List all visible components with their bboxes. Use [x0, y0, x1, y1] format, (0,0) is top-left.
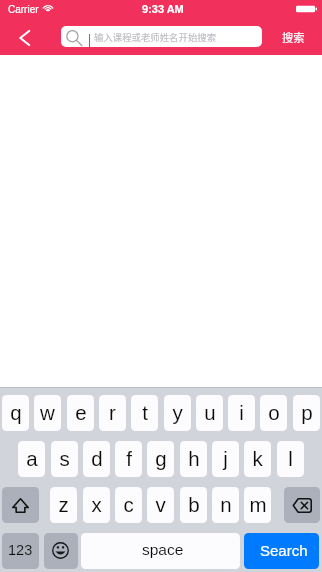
button[interactable]: l [277, 441, 304, 477]
staticText: p [301, 401, 313, 424]
staticText: h [188, 447, 200, 470]
button[interactable]: s [51, 441, 78, 477]
button[interactable]: 输入课程或老师姓名开始搜索 [61, 26, 262, 47]
staticText: r [109, 401, 116, 424]
staticText: l [288, 447, 293, 470]
button[interactable]: x [83, 487, 110, 523]
button[interactable]: Search [244, 533, 319, 569]
staticText: Carrier [8, 4, 39, 15]
button[interactable]: d [83, 441, 110, 477]
button[interactable]: k [244, 441, 271, 477]
staticText: space [142, 541, 184, 558]
button[interactable]: c [115, 487, 142, 523]
button[interactable]: Emoji [44, 533, 78, 569]
button[interactable]: u [196, 395, 223, 431]
staticText: Search [260, 542, 308, 559]
button[interactable]: Shift [2, 487, 39, 523]
staticText: j [223, 447, 228, 470]
button[interactable]: b [180, 487, 207, 523]
staticText: i [239, 401, 244, 424]
button[interactable]: y [164, 395, 191, 431]
button[interactable]: z [50, 487, 77, 523]
staticText: d [91, 447, 103, 470]
button[interactable]: n [212, 487, 239, 523]
button[interactable]: 123 [2, 533, 39, 569]
staticText: q [10, 401, 22, 424]
staticText: 123 [8, 542, 33, 558]
button[interactable]: m [244, 487, 271, 523]
staticText: k [252, 447, 263, 470]
button[interactable]: p [293, 395, 320, 431]
button[interactable]: 搜索 [273, 26, 313, 47]
button[interactable]: t [131, 395, 158, 431]
staticText: a [26, 447, 38, 470]
staticText: y [172, 401, 183, 424]
staticText: v [155, 493, 166, 516]
button[interactable]: h [180, 441, 207, 477]
button[interactable]: e [67, 395, 94, 431]
button[interactable]: w [34, 395, 61, 431]
button[interactable]: r [99, 395, 126, 431]
button[interactable]: g [147, 441, 174, 477]
staticText: o [268, 401, 280, 424]
button[interactable]: v [147, 487, 174, 523]
staticText: 9:33 AM [142, 3, 184, 15]
staticText: e [75, 401, 87, 424]
staticText: c [123, 493, 134, 516]
staticText: m [249, 493, 267, 516]
button[interactable]: o [260, 395, 287, 431]
staticText: u [204, 401, 216, 424]
staticText: 搜索 [282, 29, 305, 45]
button[interactable]: Backspace [284, 487, 320, 523]
staticText: s [59, 447, 70, 470]
button[interactable]: j [212, 441, 239, 477]
button[interactable]: space [81, 533, 240, 569]
button[interactable]: f [115, 441, 142, 477]
staticText: t [142, 401, 148, 424]
button[interactable]: a [18, 441, 45, 477]
staticText: b [188, 493, 200, 516]
staticText: 输入课程或老师姓名开始搜索 [94, 30, 217, 44]
staticText: f [126, 447, 132, 470]
button[interactable]: i [228, 395, 255, 431]
button[interactable]: q [2, 395, 29, 431]
staticText: z [58, 493, 69, 516]
staticText: n [220, 493, 232, 516]
staticText: x [91, 493, 102, 516]
button[interactable]: Back [9, 25, 39, 51]
staticText: g [155, 447, 167, 470]
staticText: w [40, 401, 55, 424]
